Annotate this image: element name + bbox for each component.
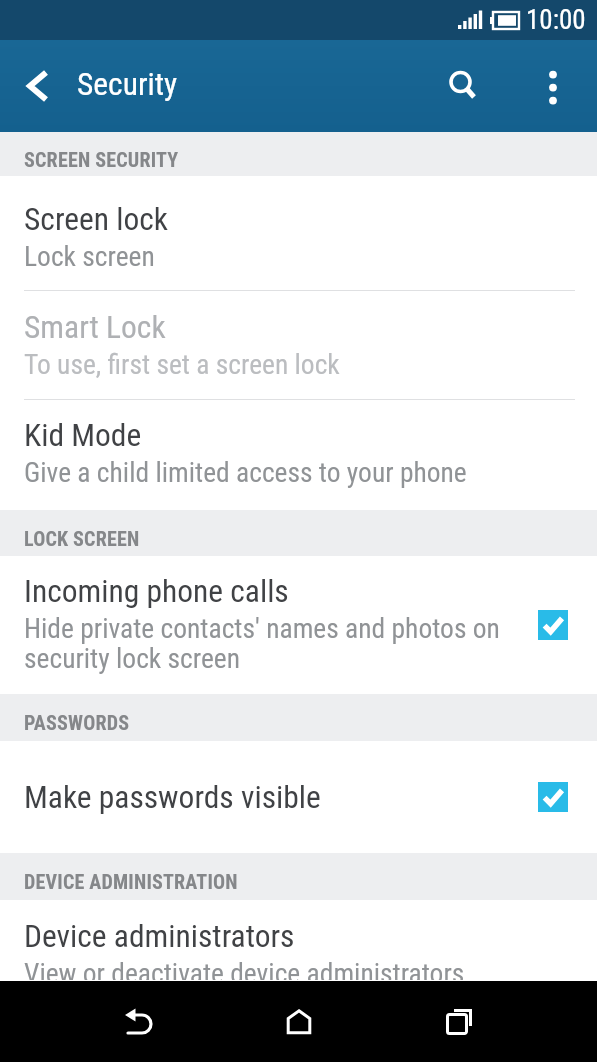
- staticText: DEVICE ADMINISTRATION: [24, 870, 238, 893]
- staticText: Screen lock: [24, 201, 168, 238]
- button[interactable]: Incoming phone calls: [0, 556, 597, 694]
- button[interactable]: [58, 981, 219, 1062]
- button[interactable]: [379, 981, 539, 1062]
- button[interactable]: Screen lock: [0, 176, 597, 290]
- staticText: Lock screen: [24, 240, 155, 272]
- button[interactable]: [419, 40, 509, 132]
- staticText: Device administrators: [24, 918, 295, 955]
- staticText: Security: [77, 66, 178, 103]
- staticText: Kid Mode: [24, 417, 142, 454]
- button[interactable]: Device administrators: [0, 900, 597, 980]
- button[interactable]: [0, 40, 66, 132]
- button[interactable]: Smart Lock: [0, 291, 597, 399]
- staticText: Incoming phone calls: [24, 573, 289, 610]
- staticText: Smart Lock: [24, 309, 166, 346]
- button[interactable]: Make passwords visible: [0, 741, 597, 853]
- staticText: View or deactivate device administrators: [24, 957, 465, 980]
- staticText: Make passwords visible: [24, 779, 538, 816]
- staticText: Hide private contacts' names and photos …: [24, 612, 500, 674]
- staticText: 10:00: [526, 4, 586, 36]
- staticText: Give a child limited access to your phon…: [24, 456, 467, 488]
- staticText: LOCK SCREEN: [24, 527, 140, 550]
- staticText: To use, first set a screen lock: [24, 348, 340, 380]
- staticText: PASSWORDS: [24, 711, 130, 734]
- button[interactable]: [509, 40, 597, 132]
- staticText: SCREEN SECURITY: [24, 148, 179, 171]
- button[interactable]: [219, 981, 379, 1062]
- button[interactable]: Kid Mode: [0, 400, 597, 510]
